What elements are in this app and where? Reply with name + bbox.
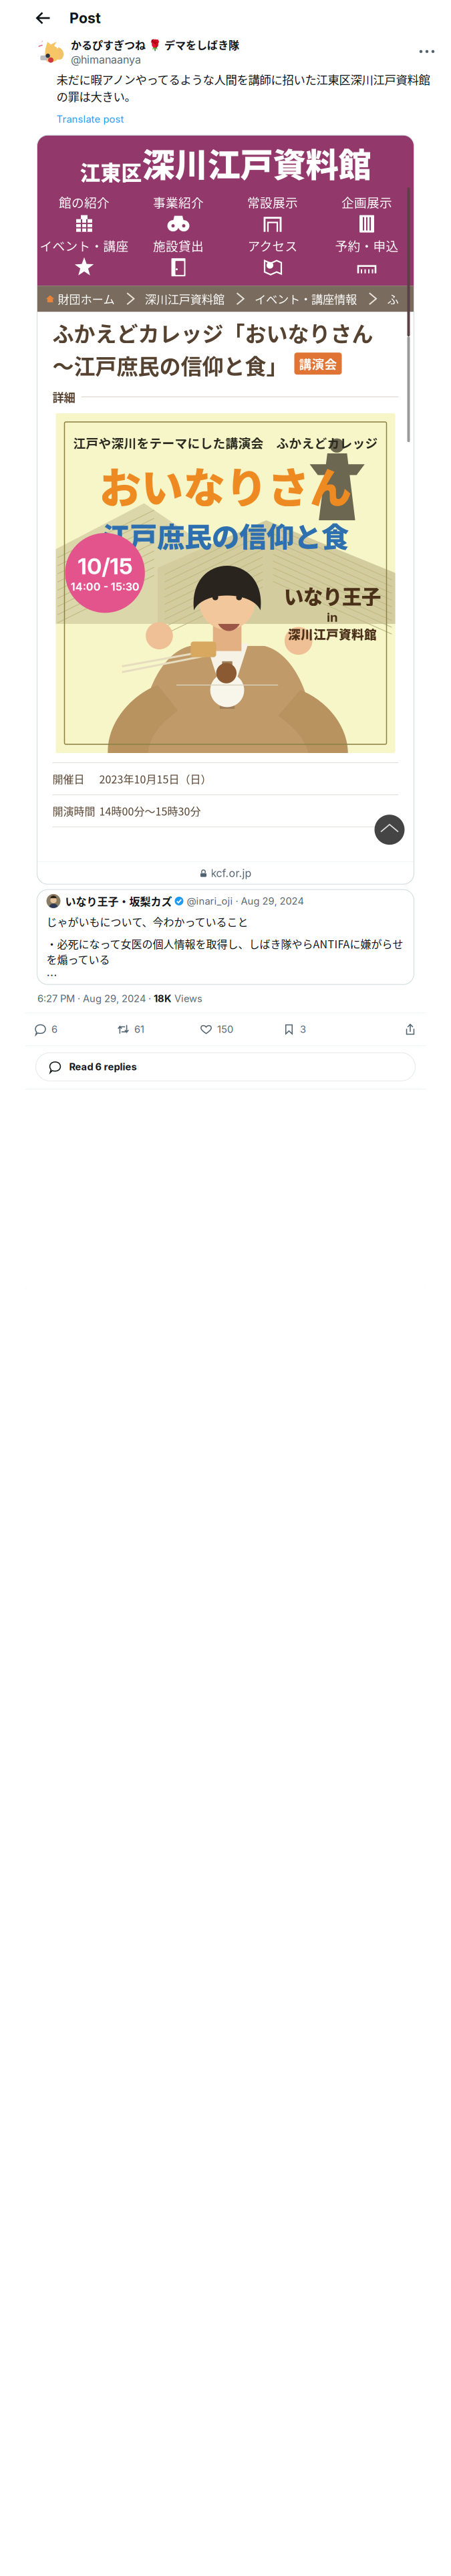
button[interactable]: Bookmark [283, 1017, 366, 1041]
staticText: 未だに暇アノンやってるような人間を講師に招いた江東区深川江戸資料館の罪は大きい。 [56, 71, 430, 104]
button[interactable]: Reply [35, 1017, 118, 1041]
button[interactable]: いなり王子・坂梨カズ [37, 890, 414, 985]
staticText: イベント・講座 [40, 237, 129, 255]
staticText: 61 [134, 1023, 144, 1035]
staticText: 施設貸出 [153, 237, 204, 255]
button[interactable]: Read 6 replies [36, 1053, 415, 1081]
staticText: 14時00分〜15時30分 [99, 803, 201, 819]
button[interactable]: 江東区 [37, 135, 414, 884]
staticText: 10/15 [78, 553, 132, 580]
staticText: かるぴすぎつね 🌹 デマをしばき隊 [71, 37, 239, 52]
staticText: 開演時間 [52, 803, 95, 819]
staticText: @inari_oji · Aug 29, 2024 [187, 895, 304, 907]
staticText: いなり王子・坂梨カズ [65, 893, 172, 909]
button[interactable]: Translate post [56, 106, 432, 133]
staticText: おいなりさん [99, 454, 352, 515]
staticText: 館の紹介 [59, 193, 110, 211]
staticText: … [46, 967, 57, 982]
staticText: 講演会 [299, 355, 337, 373]
staticText: アクセス [248, 237, 298, 255]
staticText: イベント・講座情報 [255, 290, 357, 307]
staticText: 〜江戸庶民の信仰と食」 [52, 349, 288, 380]
staticText: 事業紹介 [153, 193, 204, 211]
staticText: ふかえどカレッジ「おいなりさん [52, 317, 373, 348]
staticText: いなり王子 [284, 581, 381, 610]
button[interactable]: Share [399, 1018, 422, 1041]
staticText: 財団ホーム [58, 290, 115, 307]
staticText: Post [69, 9, 101, 27]
button[interactable]: Like [200, 1017, 283, 1041]
staticText: 14:00 - 15:30 [71, 580, 139, 593]
staticText: Views [172, 993, 202, 1004]
staticText: じゃがいもについて、今わかっていること [46, 914, 248, 929]
staticText: 予約・申込 [335, 237, 399, 255]
staticText: Translate post [56, 113, 124, 125]
staticText: 開催日 [52, 771, 85, 787]
staticText: 江戸庶民の信仰と食 [102, 515, 349, 555]
staticText: ・必死になって女医の個人情報を取得し、しばき隊やらANTIFAに嫌がらせを煽って… [46, 936, 403, 967]
staticText: 6 [51, 1023, 57, 1035]
staticText: 18K [154, 993, 172, 1004]
staticText: 深川江戸資料館 [145, 290, 224, 307]
staticText: Read 6 replies [69, 1061, 137, 1073]
staticText: 150 [217, 1023, 233, 1035]
staticText: 深川江戸資料館 [288, 625, 377, 643]
staticText: 深川江戸資料館 [142, 139, 371, 186]
staticText: 3 [300, 1023, 306, 1035]
staticText: 江東区 [80, 157, 142, 186]
staticText: 企画展示 [341, 193, 392, 211]
staticText: 2023年10月15日（日） [99, 771, 211, 787]
staticText: kcf.or.jp [211, 867, 252, 880]
button[interactable]: Back [32, 5, 55, 31]
staticText: 江戸や深川をテーマにした講演会 ふかえどカレッジ [73, 434, 378, 452]
staticText: in [327, 610, 338, 625]
button[interactable]: Repost [118, 1017, 200, 1041]
button[interactable]: More [416, 43, 438, 60]
staticText: ふ [387, 290, 398, 307]
staticText: @himanaanya [71, 53, 141, 66]
staticText: 詳細 [52, 388, 75, 405]
staticText: 6:27 PM · Aug 29, 2024 · [37, 993, 154, 1004]
staticText: 常設展示 [247, 193, 298, 211]
